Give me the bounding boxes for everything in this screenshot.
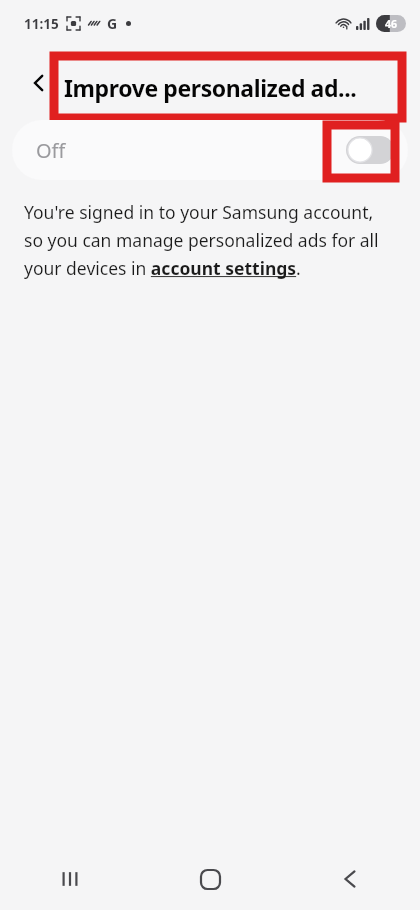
button[interactable]: Improve personalized ads toggle bbox=[346, 136, 394, 164]
button[interactable]: Back bbox=[18, 62, 60, 104]
staticText: 46 bbox=[385, 17, 398, 31]
staticText: 11:15 bbox=[24, 15, 59, 33]
button[interactable]: Improve personalized ad... bbox=[64, 72, 357, 103]
button[interactable]: Off bbox=[12, 120, 408, 180]
button[interactable]: Recents bbox=[0, 848, 140, 910]
button[interactable]: Back bbox=[280, 848, 420, 910]
staticText: Off bbox=[36, 137, 66, 164]
staticText: G bbox=[107, 14, 118, 33]
button[interactable]: Home bbox=[140, 848, 280, 910]
button[interactable]: You're signed in to your Samsung account… bbox=[24, 200, 396, 280]
